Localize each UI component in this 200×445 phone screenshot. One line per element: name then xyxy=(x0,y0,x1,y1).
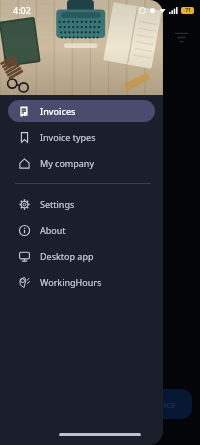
staticText: 4:02 xyxy=(13,4,31,16)
button[interactable]: Settings xyxy=(8,193,155,215)
button[interactable]: WorkingHours xyxy=(8,271,155,293)
button[interactable]: Invoice types xyxy=(8,126,155,148)
button[interactable]: About xyxy=(8,219,155,241)
staticText: My company xyxy=(40,157,95,169)
button[interactable]: Desktop app xyxy=(8,245,155,267)
staticText: New Invoice xyxy=(123,398,176,410)
staticText: Invoice types xyxy=(40,131,96,143)
button[interactable]: Invoices xyxy=(8,100,155,122)
button[interactable]: New Invoice xyxy=(106,389,192,419)
staticText: Settings xyxy=(40,198,75,210)
staticText: About xyxy=(40,224,66,236)
staticText: WorkingHours xyxy=(40,276,102,288)
staticText: 71 xyxy=(185,7,191,14)
staticText: Desktop app xyxy=(40,250,94,262)
button[interactable]: Filter xyxy=(168,24,194,50)
button[interactable]: My company xyxy=(8,152,155,174)
staticText: Invoices xyxy=(40,105,76,117)
